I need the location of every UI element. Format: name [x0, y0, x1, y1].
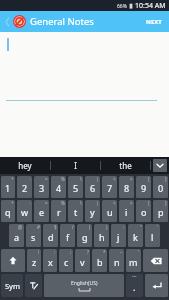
staticText: I — [74, 160, 77, 171]
button[interactable]: \ — [68, 176, 83, 198]
button[interactable]: > — [119, 200, 134, 222]
staticText: < — [113, 200, 116, 206]
staticText: + — [11, 200, 14, 206]
button[interactable]: : — [43, 249, 57, 272]
button[interactable]: = — [34, 200, 49, 222]
button[interactable]: % — [51, 176, 66, 198]
button[interactable]: hey — [0, 157, 50, 174]
button[interactable]: < — [102, 176, 117, 198]
staticText: ! — [38, 249, 40, 255]
button[interactable]: $ — [43, 224, 58, 247]
button[interactable]: [ — [136, 200, 151, 222]
staticText: . — [133, 281, 136, 293]
staticText: i — [125, 206, 128, 218]
staticText: m — [129, 256, 138, 268]
button[interactable]: ' — [126, 249, 141, 272]
button[interactable]: ) — [94, 224, 109, 247]
button[interactable]: = — [34, 176, 49, 198]
staticText: s — [31, 231, 36, 243]
staticText: b — [97, 256, 103, 268]
staticText: + — [11, 176, 14, 182]
staticText: General Notes — [30, 15, 94, 28]
button[interactable]: Backspace — [143, 249, 168, 272]
staticText: " — [140, 224, 142, 230]
staticText: = — [45, 176, 48, 182]
staticText: 7 — [107, 182, 113, 194]
staticText: t — [74, 206, 78, 218]
button[interactable]: + — [1, 176, 15, 198]
button[interactable]: the — [101, 157, 150, 174]
button[interactable]: Shift — [1, 249, 25, 272]
button[interactable]: " — [128, 224, 143, 247]
button[interactable]: + — [1, 200, 15, 222]
button[interactable]: ! — [27, 249, 41, 272]
button[interactable]: / — [60, 224, 75, 247]
staticText: j — [117, 231, 120, 243]
button[interactable]: Enter — [145, 274, 168, 297]
button[interactable]: ~ — [109, 249, 124, 272]
button[interactable]: | — [85, 176, 100, 198]
staticText: @ — [18, 224, 23, 230]
button[interactable]: ] — [153, 200, 168, 222]
staticText: [ — [148, 176, 150, 182]
staticText: n — [114, 256, 120, 268]
button[interactable]: Space — [44, 274, 124, 297]
button[interactable]: * — [92, 249, 107, 272]
staticText: % — [61, 200, 65, 206]
staticText: Sym — [5, 281, 20, 291]
staticText: ] — [165, 200, 167, 206]
staticText: y — [90, 206, 95, 218]
staticText: / — [72, 224, 74, 230]
staticText: % — [61, 176, 65, 182]
staticText: # — [37, 224, 40, 230]
staticText: 5 — [73, 182, 79, 194]
button[interactable]: ] — [153, 176, 168, 198]
staticText: p — [158, 206, 164, 218]
staticText: \ — [80, 200, 82, 206]
button[interactable]: # — [26, 224, 41, 247]
staticText: 9 — [141, 182, 147, 194]
button[interactable]: Back — [3, 13, 12, 31]
button[interactable]: ' — [145, 224, 160, 247]
button[interactable]: [ — [136, 176, 151, 198]
button[interactable]: I — [51, 157, 100, 174]
staticText: x — [48, 256, 53, 268]
button[interactable]: | — [85, 200, 100, 222]
staticText: 10:54 AM — [135, 1, 166, 11]
staticText: v — [80, 256, 85, 268]
button[interactable]: > — [119, 176, 134, 198]
staticText: * — [103, 249, 106, 255]
button[interactable]: < — [102, 200, 117, 222]
staticText: ; — [70, 249, 72, 255]
button[interactable]: ? — [75, 249, 90, 272]
staticText: ~ — [120, 249, 123, 255]
button[interactable]: \ — [68, 200, 83, 222]
button[interactable]: Handwriting — [25, 274, 42, 297]
staticText: $ — [54, 224, 57, 230]
button[interactable]: NEXT — [142, 14, 166, 30]
staticText: z — [32, 256, 37, 268]
staticText: ' — [157, 224, 159, 230]
staticText: a — [14, 231, 20, 243]
button[interactable]: ••• — [126, 274, 143, 297]
staticText: - — [29, 176, 31, 182]
button[interactable]: Expand suggestions — [153, 159, 167, 172]
button[interactable]: - — [17, 176, 32, 198]
staticText: d — [48, 231, 54, 243]
staticText: < — [113, 176, 116, 182]
button[interactable]: @ — [9, 224, 24, 247]
button[interactable]: ; — [59, 249, 73, 272]
staticText: k — [133, 231, 138, 243]
button[interactable]: - — [17, 200, 32, 222]
staticText: q — [5, 206, 11, 218]
staticText: - — [29, 200, 31, 206]
staticText: ' — [138, 249, 140, 255]
staticText: h — [99, 231, 105, 243]
staticText: 6 — [90, 182, 96, 194]
button[interactable]: Sym — [1, 274, 23, 297]
button[interactable]: ( — [77, 224, 92, 247]
staticText: > — [130, 200, 133, 206]
staticText: NEXT — [146, 18, 162, 26]
button[interactable]: % — [51, 200, 66, 222]
button[interactable]: - — [111, 224, 126, 247]
